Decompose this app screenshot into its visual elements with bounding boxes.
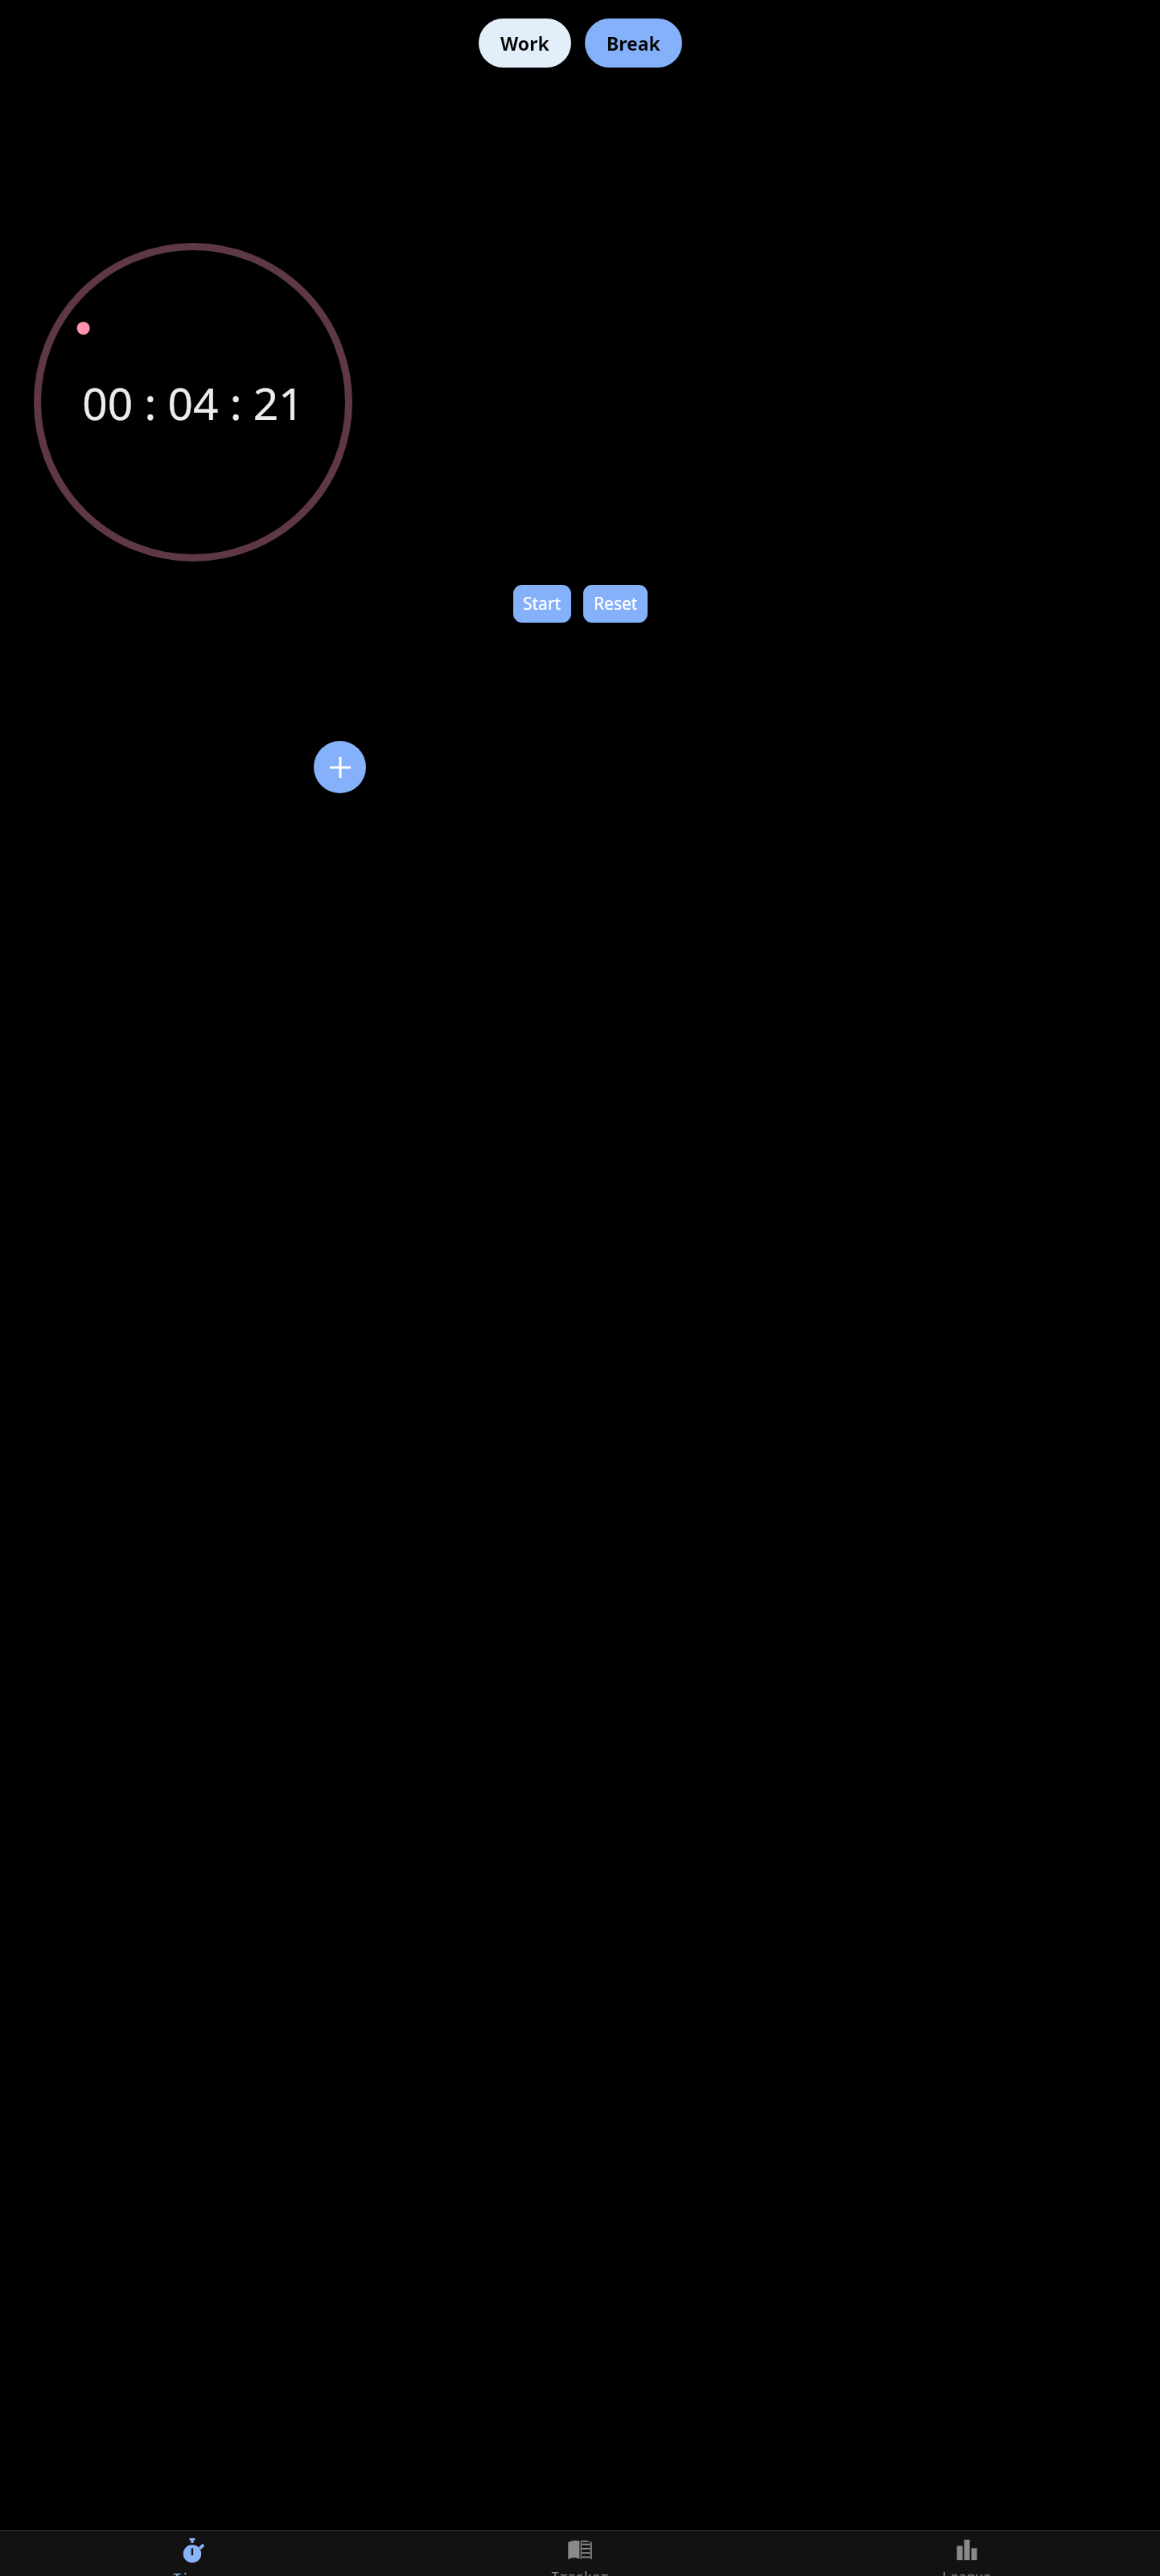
staticText: Break [607,31,660,56]
button[interactable]: Add [314,741,366,793]
staticText: 00 : 04 : 21 [82,372,304,433]
button[interactable]: Break [585,19,682,68]
button[interactable]: League [773,2531,1160,2576]
button[interactable]: Start [513,585,571,623]
button[interactable]: Work [479,19,571,68]
staticText: Work [500,31,549,56]
staticText: Reset [594,592,638,615]
button[interactable]: Reset [583,585,648,623]
button[interactable]: Timer [0,2531,386,2576]
staticText: Tracker [551,2567,609,2576]
staticText: League [942,2567,992,2576]
staticText: Start [523,592,561,615]
staticText: Timer [173,2569,214,2576]
button[interactable]: Tracker [386,2531,773,2576]
